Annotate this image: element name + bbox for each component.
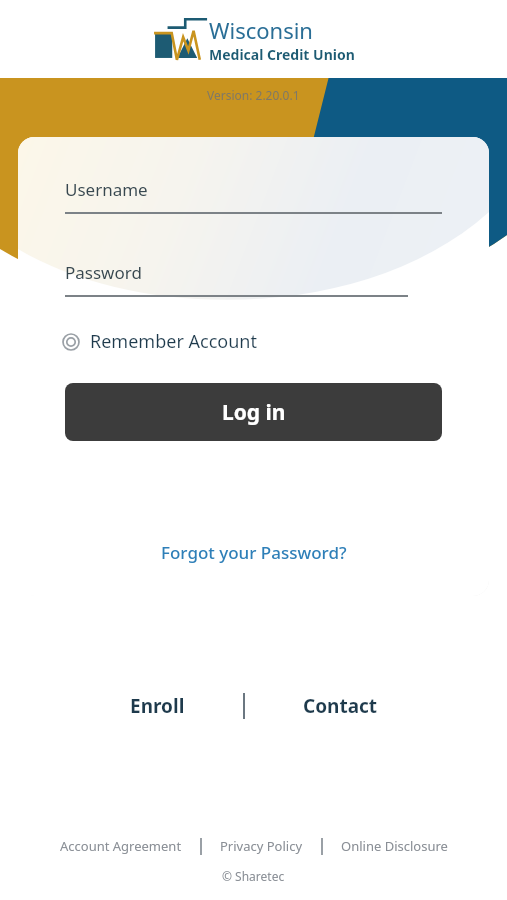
staticText: Contact — [303, 693, 378, 719]
button[interactable]: Account Agreement — [53, 833, 189, 859]
button[interactable]: Online Disclosure — [334, 833, 455, 859]
staticText: Forgot your Password? — [161, 541, 347, 564]
staticText: Log in — [222, 398, 286, 427]
button[interactable]: Remember Account — [18, 323, 489, 360]
button[interactable]: Username — [18, 178, 489, 214]
staticText: Username — [65, 178, 148, 201]
staticText: Privacy Policy — [220, 837, 303, 855]
staticText: © Sharetec — [222, 868, 285, 884]
other: Wisconsin Medical Credit Union — [153, 15, 355, 64]
button[interactable]: Log in — [65, 383, 442, 441]
staticText: Online Disclosure — [341, 837, 448, 855]
staticText: Password — [65, 261, 142, 284]
staticText: Account Agreement — [60, 837, 182, 855]
button[interactable]: Enroll — [112, 687, 203, 725]
button[interactable]: Contact — [285, 687, 396, 725]
staticText: Medical Credit Union — [209, 45, 355, 64]
button[interactable]: Forgot your Password? — [151, 535, 357, 570]
staticText: Remember Account — [90, 329, 257, 354]
button[interactable]: Privacy Policy — [213, 833, 310, 859]
staticText: Wisconsin — [209, 15, 313, 45]
staticText: Enroll — [130, 693, 185, 719]
staticText: Version: 2.20.0.1 — [207, 87, 300, 103]
button[interactable]: Password — [18, 261, 489, 297]
